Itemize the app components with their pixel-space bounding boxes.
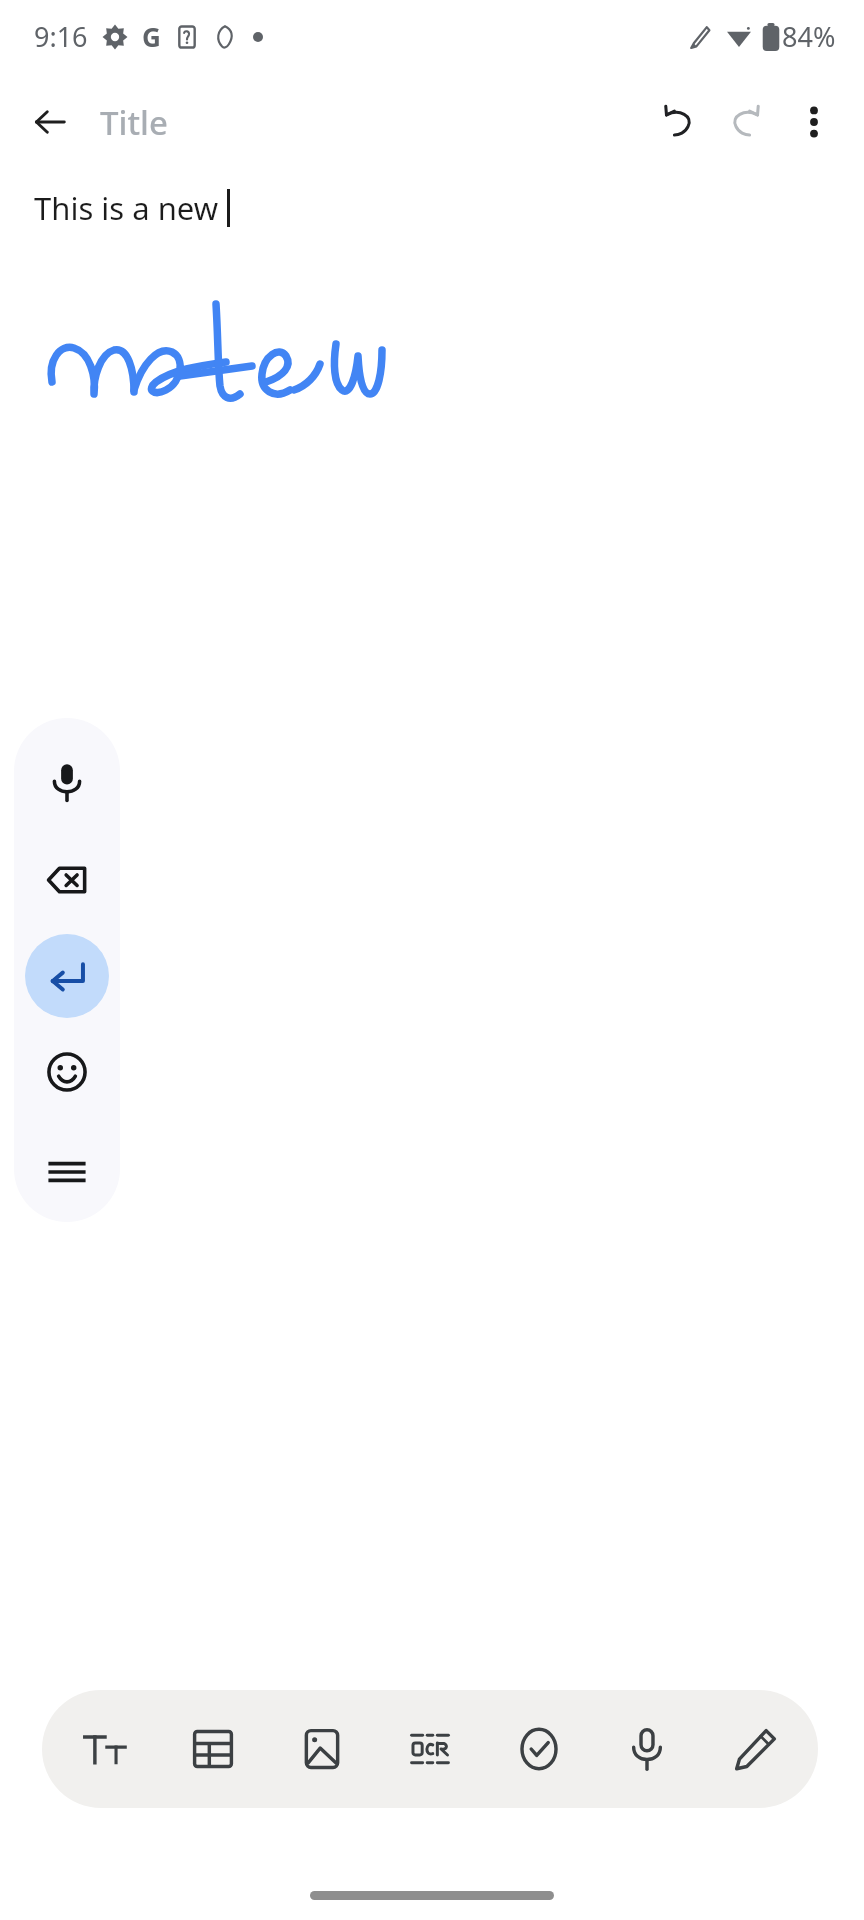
staticText: 84%	[782, 18, 836, 55]
button[interactable]: Insert table	[167, 1703, 259, 1795]
button[interactable]: Title	[100, 100, 168, 145]
button[interactable]: Insert image	[276, 1703, 368, 1795]
button[interactable]: Draw	[710, 1703, 802, 1795]
staticText: G	[142, 19, 161, 54]
button[interactable]: Enter	[25, 934, 109, 1018]
button[interactable]: Redo	[712, 88, 780, 156]
button[interactable]: Record audio	[601, 1703, 693, 1795]
button[interactable]: Menu	[25, 1130, 109, 1214]
button[interactable]: Text formatting	[59, 1703, 151, 1795]
button[interactable]: Scan text (OCR)	[384, 1703, 476, 1795]
button[interactable]: More options	[780, 88, 848, 156]
button[interactable]: Backspace	[25, 838, 109, 922]
button[interactable]: Undo	[644, 88, 712, 156]
button[interactable]: Checklist	[493, 1703, 585, 1795]
button[interactable]: This is a new	[0, 178, 864, 238]
button[interactable]: Voice input	[25, 740, 109, 824]
staticText: 9:16	[34, 18, 88, 55]
staticText: This is a new	[34, 187, 227, 229]
button[interactable]: Emoji	[25, 1030, 109, 1114]
button[interactable]: Back	[18, 90, 82, 154]
